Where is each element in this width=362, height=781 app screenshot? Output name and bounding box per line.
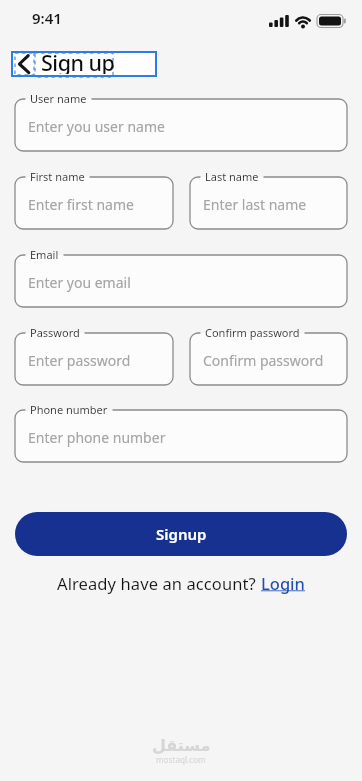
button[interactable]: Enter you email xyxy=(15,255,347,307)
button[interactable]: Login xyxy=(261,572,305,594)
button[interactable]: Enter you user name xyxy=(15,99,347,151)
button[interactable]: Enter first name xyxy=(15,177,173,229)
staticText: Sign up xyxy=(41,48,115,74)
button[interactable]: Enter phone number xyxy=(15,410,347,462)
staticText: Already have an account? xyxy=(57,572,261,594)
staticText: Enter phone number xyxy=(28,428,166,447)
staticText: Confirm password xyxy=(205,325,300,340)
button[interactable] xyxy=(15,53,35,75)
staticText: Phone number xyxy=(30,402,108,417)
staticText: Confirm password xyxy=(203,351,324,370)
button[interactable]: Enter password xyxy=(15,333,173,385)
staticText: Enter last name xyxy=(203,195,307,214)
staticText: Enter first name xyxy=(28,195,134,214)
staticText: 9:41 xyxy=(32,8,62,28)
staticText: Enter you email xyxy=(28,273,131,292)
staticText: Password xyxy=(30,325,80,340)
staticText: Enter password xyxy=(28,351,131,370)
staticText: مستقل xyxy=(152,736,211,755)
staticText: Enter you user name xyxy=(28,117,165,136)
staticText: mostaql.com xyxy=(156,754,206,765)
staticText: User name xyxy=(30,91,87,106)
button[interactable]: Enter last name xyxy=(190,177,347,229)
staticText: First name xyxy=(30,169,85,184)
button[interactable]: Confirm password xyxy=(190,333,347,385)
staticText: Last name xyxy=(205,169,259,184)
staticText: Email xyxy=(30,247,59,262)
staticText: Signup xyxy=(156,524,207,544)
button[interactable]: Signup xyxy=(15,512,347,556)
